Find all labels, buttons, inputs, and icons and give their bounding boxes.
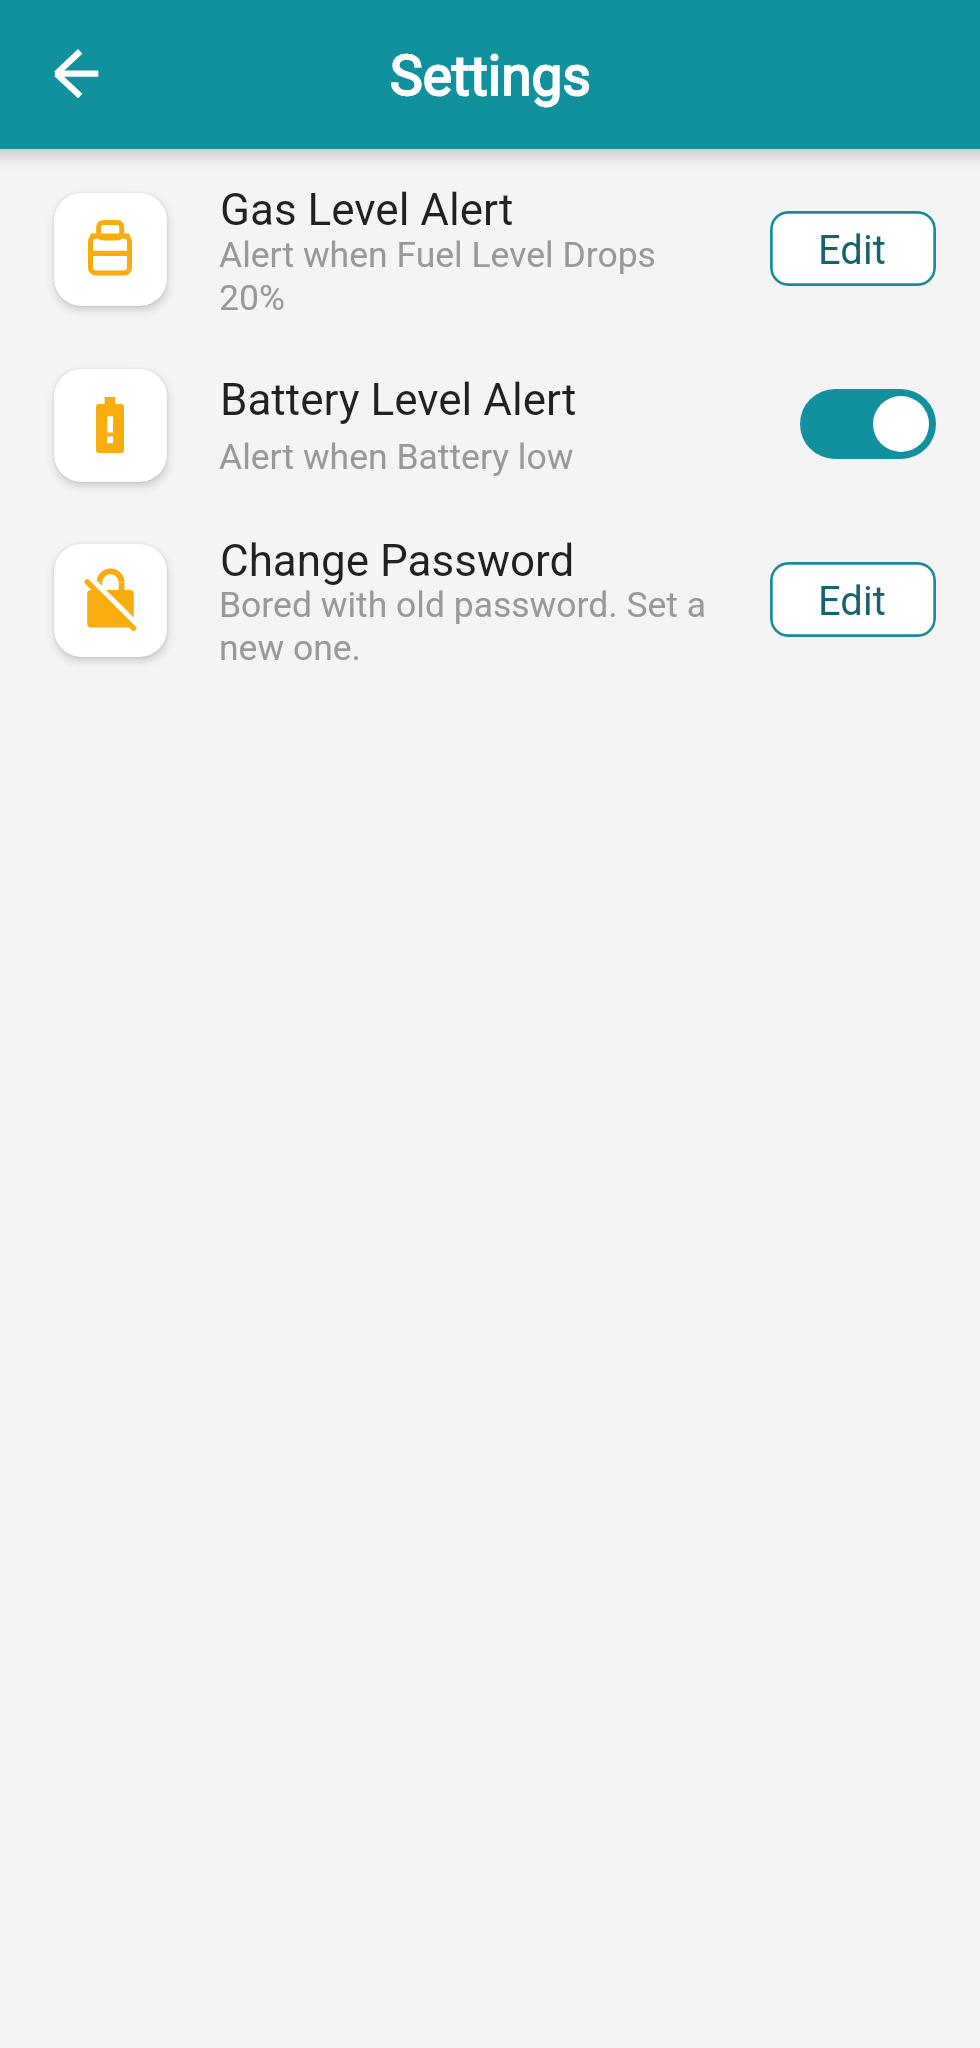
staticText: Bored with old password. Set a new one.: [219, 584, 707, 669]
button[interactable]: Back: [32, 29, 120, 117]
button[interactable]: Edit password: [770, 562, 936, 637]
button[interactable]: Battery Level Alert: [54, 369, 167, 482]
button[interactable]: Battery level alert toggle: [800, 389, 936, 459]
staticText: Edit: [818, 578, 886, 625]
staticText: Battery Level Alert: [220, 374, 577, 426]
staticText: Edit: [818, 227, 886, 274]
button[interactable]: Change Password: [54, 544, 167, 657]
button[interactable]: Gas Level Alert: [54, 193, 167, 306]
staticText: Settings: [390, 44, 591, 108]
staticText: Alert when Battery low: [219, 436, 574, 478]
staticText: Change Password: [220, 535, 575, 587]
staticText: Alert when Fuel Level Drops 20%: [219, 234, 656, 319]
button[interactable]: Edit gas level alert: [770, 211, 936, 286]
staticText: Gas Level Alert: [220, 184, 514, 236]
